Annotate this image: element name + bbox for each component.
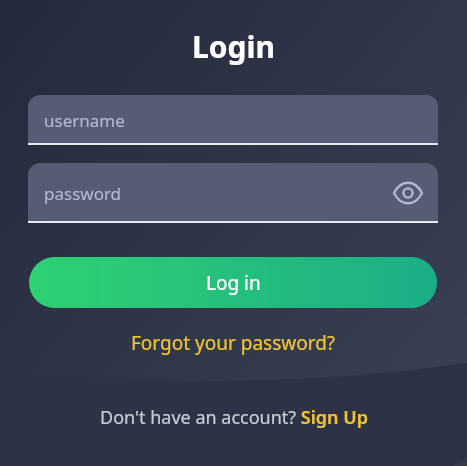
button[interactable]: password xyxy=(28,163,438,223)
staticText: Don't have an account? Sign Up xyxy=(100,405,368,430)
button[interactable] xyxy=(394,182,422,204)
button[interactable]: Log in xyxy=(29,257,437,308)
button[interactable]: Forgot your password? xyxy=(131,330,336,356)
button[interactable]: Don't have an account? Sign Up xyxy=(100,405,368,430)
staticText: Log in xyxy=(206,270,261,296)
staticText: username xyxy=(44,109,125,132)
staticText: Forgot your password? xyxy=(131,330,336,356)
staticText: Login xyxy=(192,26,275,67)
staticText: password xyxy=(44,182,122,205)
button[interactable]: username xyxy=(28,95,438,145)
